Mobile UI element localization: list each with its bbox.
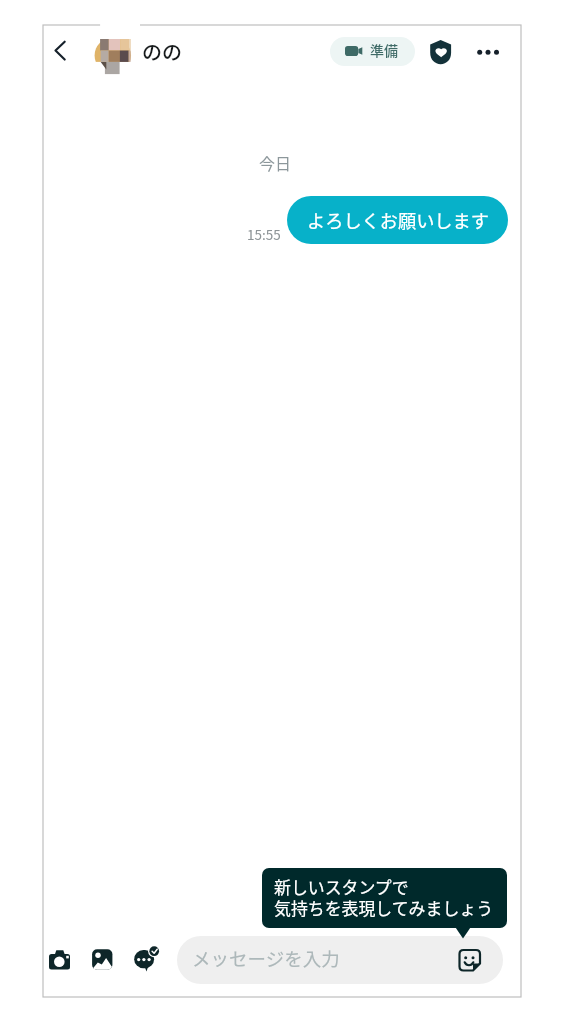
button[interactable]: メッセージを入力 — [177, 936, 503, 984]
button[interactable]: Sticker — [455, 945, 485, 975]
staticText: 準備 — [370, 40, 398, 60]
button[interactable]: 新しいスタンプで 気持ちを表現してみましょう — [262, 868, 507, 928]
staticText: 15:55 — [247, 224, 281, 244]
staticText: メッセージを入力 — [192, 945, 340, 972]
button[interactable]: More options — [468, 36, 502, 68]
staticText: のの — [142, 37, 182, 66]
button[interactable]: Camera — [42, 943, 78, 977]
staticText: よろしくお願いします — [307, 207, 489, 233]
button[interactable]: Photos — [85, 943, 121, 977]
staticText: 今日 — [259, 151, 292, 174]
staticText: 新しいスタンプで 気持ちを表現してみましょう — [274, 874, 494, 920]
button[interactable]: のの — [90, 34, 190, 78]
button[interactable]: よろしくお願いします — [287, 196, 508, 244]
button[interactable]: Stickers — [127, 941, 165, 977]
button[interactable]: Letter sealing — [424, 34, 458, 70]
button[interactable]: 準備 — [330, 37, 415, 66]
button[interactable]: Back — [46, 33, 80, 67]
